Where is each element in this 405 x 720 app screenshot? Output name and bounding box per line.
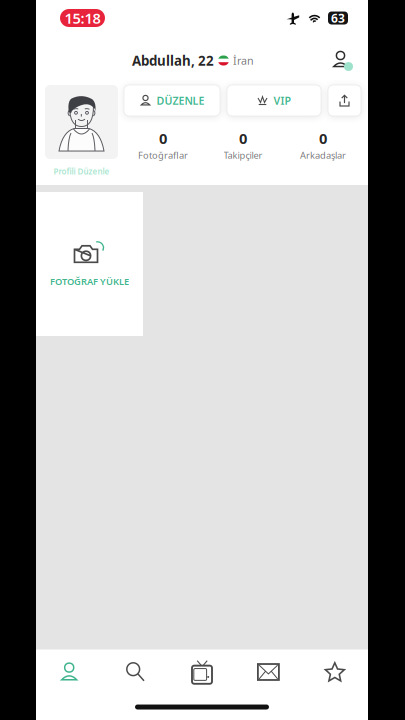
staticText: Profili Düzenle [53,166,109,177]
button[interactable] [45,85,118,159]
staticText: VIP [273,93,291,108]
button[interactable]: Search [102,650,169,694]
button[interactable]: Favourites [302,650,368,694]
staticText: İran [233,53,254,68]
button[interactable]: 0 [203,128,283,162]
button[interactable]: 0 [283,128,363,162]
button[interactable]: DÜZENLE [124,85,220,116]
staticText: 0 [239,129,247,148]
staticText: 0 [159,129,167,148]
button[interactable]: VIP [227,85,321,116]
button[interactable]: 0 [123,128,203,162]
staticText: DÜZENLE [156,93,204,108]
button[interactable]: Account [329,47,355,73]
staticText: Abdullah, 22 [132,52,214,69]
staticText: 0 [319,129,327,148]
button[interactable]: Profili Düzenle [53,166,109,177]
button[interactable]: Messages [235,650,302,694]
staticText: Takipçiler [223,149,262,161]
button[interactable]: FOTOĞRAF YÜKLE [36,192,143,336]
button[interactable]: Share [328,85,361,116]
staticText: Fotoğraflar [138,149,188,161]
staticText: 15:18 [64,8,100,28]
staticText: 63 [331,10,345,26]
staticText: FOTOĞRAF YÜKLE [50,275,129,288]
button[interactable]: Profile [36,650,102,694]
staticText: Arkadaşlar [300,149,346,161]
button[interactable]: Live [169,650,235,694]
